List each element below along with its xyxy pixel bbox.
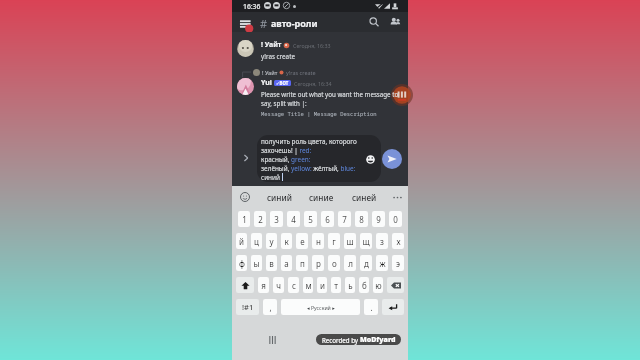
button[interactable]: Symbols [236,299,259,315]
staticText: и [320,280,325,291]
button[interactable]: Space [281,299,360,315]
staticText: х [396,236,401,247]
staticText: ш [346,236,354,247]
staticText: получить роль цвета, которого захочешь! … [261,137,369,182]
button[interactable]: 9 [372,211,385,227]
staticText: # [260,16,268,31]
button[interactable]: 7 [338,211,351,227]
button[interactable]: получить роль цвета, которого захочешь! … [257,135,381,182]
button[interactable]: п [296,255,308,271]
button[interactable]: е [296,233,308,249]
button[interactable]: ю [373,277,383,293]
button[interactable]: Show actions [240,152,252,164]
button[interactable]: й [236,233,247,249]
button[interactable]: о [328,255,340,271]
button[interactable]: к [281,233,292,249]
staticText: й [239,236,244,247]
staticText: р [316,258,321,269]
button[interactable]: Search [367,15,381,29]
staticText: у [269,236,274,247]
button[interactable]: ч [273,277,284,293]
staticText: я [261,280,266,291]
staticText: ч [276,280,281,291]
staticText: 6 [325,214,330,225]
staticText: е [300,236,305,247]
staticText: 0 [393,214,398,225]
staticText: ! Уайт [262,69,278,76]
button[interactable]: м [303,277,313,293]
button[interactable]: 5 [304,211,317,227]
staticText: , [269,302,272,313]
button[interactable]: я [258,277,269,293]
staticText: щ [362,236,370,247]
button[interactable]: 8 [355,211,368,227]
button[interactable]: ц [251,233,262,249]
button[interactable]: 6 [321,211,334,227]
button[interactable]: х [392,233,404,249]
button[interactable]: з [376,233,388,249]
button[interactable]: Send [382,149,402,169]
button[interactable]: Backspace [387,277,404,293]
button[interactable]: н [312,233,324,249]
button[interactable]: р [312,255,324,271]
staticText: 4 [291,214,296,225]
button[interactable]: 1 [238,211,250,227]
button[interactable]: синий [258,186,300,208]
button[interactable]: , [263,299,277,315]
button[interactable]: г [328,233,340,249]
staticText: з [380,236,384,247]
button[interactable]: щ [360,233,372,249]
button[interactable]: синие [300,186,343,208]
button[interactable]: Open channel list [238,15,252,29]
button[interactable]: Shift [236,277,254,293]
button[interactable]: ш [344,233,356,249]
button[interactable]: ж [376,255,388,271]
button[interactable]: д [360,255,372,271]
staticText: д [364,258,369,269]
staticText: y!ras create [261,52,295,61]
staticText: л [348,258,353,269]
staticText: с [292,280,296,291]
staticText: к [284,236,289,247]
button[interactable]: ф [236,255,247,271]
button[interactable]: 4 [287,211,300,227]
staticText: ! Уайт [261,40,282,50]
button[interactable]: Emoji [364,153,376,165]
button[interactable]: . [364,299,378,315]
button[interactable]: 3 [270,211,283,227]
button[interactable]: б [359,277,369,293]
staticText: синий [267,192,292,203]
button[interactable]: ь [345,277,355,293]
staticText: 7 [342,214,347,225]
staticText: Recorded by [322,336,360,344]
staticText: ю [375,280,382,291]
button[interactable]: у [266,233,277,249]
staticText: ы [253,258,260,269]
staticText: ф [239,258,245,269]
staticText: э [396,258,400,269]
button[interactable]: э [392,255,404,271]
button[interactable]: и [317,277,327,293]
button[interactable]: л [344,255,356,271]
button[interactable]: 0 [389,211,402,227]
button[interactable]: Members [388,15,402,29]
button[interactable]: Emoji keyboard [232,186,258,208]
staticText: о [332,258,337,269]
staticText: синие [309,192,334,203]
button[interactable]: синей [343,186,386,208]
staticText: т [334,280,338,291]
button[interactable]: т [331,277,341,293]
button[interactable]: а [281,255,292,271]
button[interactable]: ы [251,255,262,271]
staticText: п [300,258,305,269]
button[interactable]: 2 [254,211,266,227]
staticText: 8 [359,214,364,225]
button[interactable]: в [266,255,277,271]
button[interactable]: с [288,277,299,293]
button[interactable]: Enter [382,299,404,315]
staticText: 1 [242,214,247,225]
staticText: авто-роли [271,17,318,29]
staticText: синей [352,192,377,203]
button[interactable]: More suggestions [386,186,408,208]
staticText: н [316,236,321,247]
